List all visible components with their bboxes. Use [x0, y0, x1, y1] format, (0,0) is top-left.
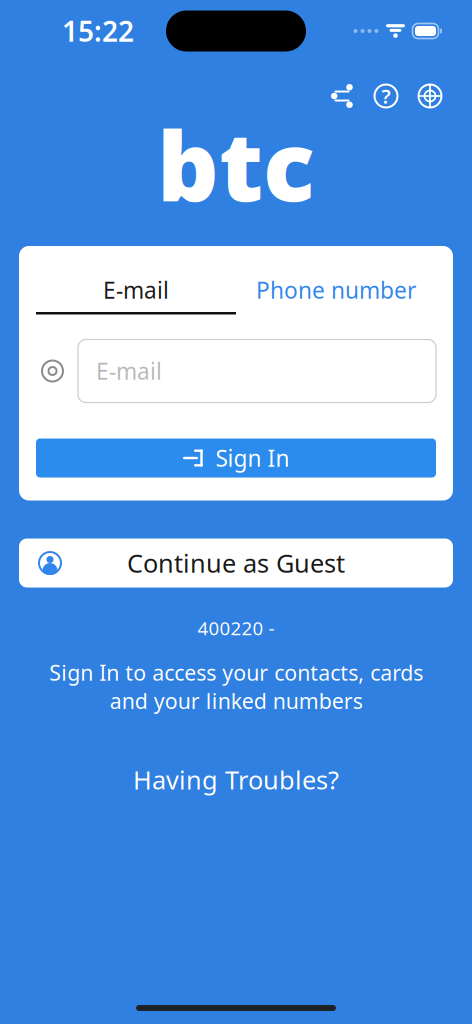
- button[interactable]: Phone number: [236, 268, 436, 314]
- button[interactable]: E-mail: [36, 268, 236, 314]
- staticText: Sign In: [215, 443, 289, 473]
- button[interactable]: Share: [322, 76, 362, 116]
- staticText: 15:22: [62, 12, 134, 50]
- button[interactable]: Help: [366, 76, 406, 116]
- staticText: Continue as Guest: [127, 546, 345, 580]
- staticText: 400220 -: [197, 615, 274, 640]
- button[interactable]: Having Troubles?: [117, 755, 355, 805]
- button[interactable]: Continue as Guest: [19, 538, 453, 587]
- staticText: ?: [381, 83, 390, 109]
- staticText: E-mail: [96, 356, 162, 386]
- button[interactable]: Language: [410, 76, 450, 116]
- staticText: Sign In to access your contacts, cards a…: [49, 658, 423, 715]
- staticText: Having Troubles?: [133, 763, 339, 797]
- button[interactable]: Sign In: [36, 438, 436, 477]
- staticText: btc: [157, 100, 315, 228]
- staticText: Phone number: [256, 275, 416, 305]
- staticText: E-mail: [103, 275, 169, 305]
